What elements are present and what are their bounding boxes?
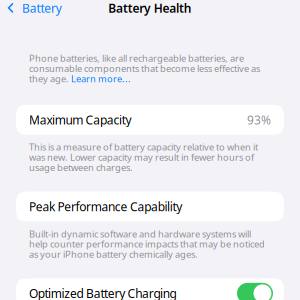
staticText: Peak Performance Capability <box>29 199 182 214</box>
staticText: Battery <box>22 0 62 16</box>
button[interactable]: Peak Performance Capability <box>0 192 300 222</box>
button[interactable]: Battery <box>0 0 70 17</box>
staticText: 93% <box>247 112 271 128</box>
staticText: Phone batteries, like all rechargeable b… <box>29 52 260 85</box>
button[interactable]: Optimized Battery Charging <box>0 278 300 300</box>
button[interactable]: Maximum Capacity <box>0 105 300 135</box>
staticText: Built-in dynamic software and hardware s… <box>29 228 265 260</box>
staticText: This is a measure of battery capacity re… <box>29 141 258 174</box>
staticText: Optimized Battery Charging <box>29 285 176 300</box>
staticText: Maximum Capacity <box>29 112 131 128</box>
staticText: Battery Health <box>108 0 192 16</box>
button[interactable]: Optimized Battery Charging <box>237 283 273 300</box>
